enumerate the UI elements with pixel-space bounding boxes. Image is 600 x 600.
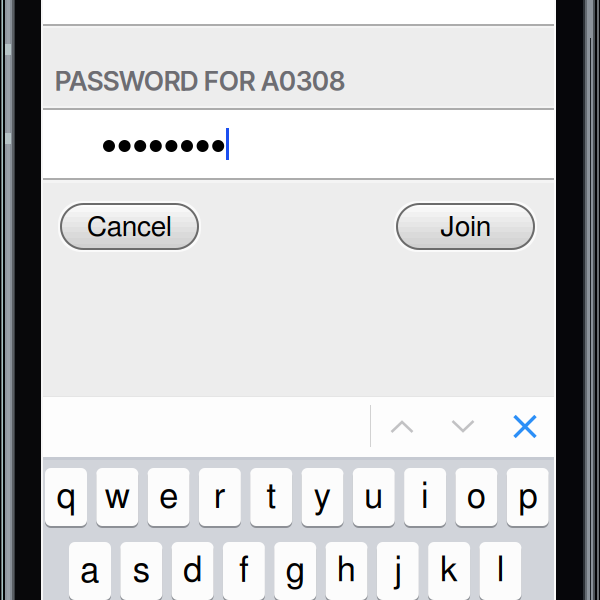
staticText: PASSWORD FOR A0308	[55, 65, 345, 97]
staticText: e	[160, 480, 178, 514]
button[interactable]: w	[96, 467, 138, 527]
staticText: i	[421, 480, 429, 514]
button[interactable]: Join	[396, 203, 535, 250]
staticText: a	[80, 554, 99, 588]
button[interactable]: r	[199, 467, 241, 527]
staticText: k	[440, 554, 458, 588]
button[interactable]: Next field	[437, 396, 489, 457]
button[interactable]: Dismiss keyboard	[499, 396, 551, 457]
button[interactable]: Previous field	[376, 396, 428, 457]
button[interactable]: u	[353, 467, 395, 527]
staticText: Cancel	[87, 213, 172, 241]
button[interactable]: f	[223, 541, 265, 600]
staticText: g	[286, 554, 305, 588]
button[interactable]: j	[377, 541, 419, 600]
staticText: h	[337, 554, 356, 588]
button[interactable]: h	[325, 541, 367, 600]
button[interactable]: o	[455, 467, 497, 527]
button[interactable]: y	[301, 467, 343, 527]
staticText: f	[239, 554, 249, 588]
staticText: r	[214, 480, 226, 514]
staticText: y	[314, 480, 331, 514]
button[interactable]: p	[507, 467, 549, 527]
staticText: Join	[440, 213, 491, 241]
staticText: s	[133, 554, 150, 588]
staticText: j	[394, 554, 402, 588]
button[interactable]: l	[479, 541, 521, 600]
staticText: p	[518, 480, 537, 514]
button[interactable]: k	[428, 541, 470, 600]
button[interactable]: Cancel	[60, 203, 199, 250]
button[interactable]: s	[120, 541, 162, 600]
staticText: t	[266, 480, 276, 514]
staticText: o	[467, 480, 486, 514]
staticText: u	[364, 480, 383, 514]
button[interactable]: d	[172, 541, 214, 600]
button[interactable]: a	[69, 541, 111, 600]
button[interactable]: t	[250, 467, 292, 527]
staticText: q	[56, 480, 75, 514]
button[interactable]: g	[274, 541, 316, 600]
button[interactable]: i	[404, 467, 446, 527]
staticText: l	[497, 554, 504, 588]
button[interactable]: e	[148, 467, 190, 527]
staticText: d	[183, 554, 202, 588]
button[interactable]: q	[45, 467, 87, 527]
staticText: w	[105, 480, 130, 514]
